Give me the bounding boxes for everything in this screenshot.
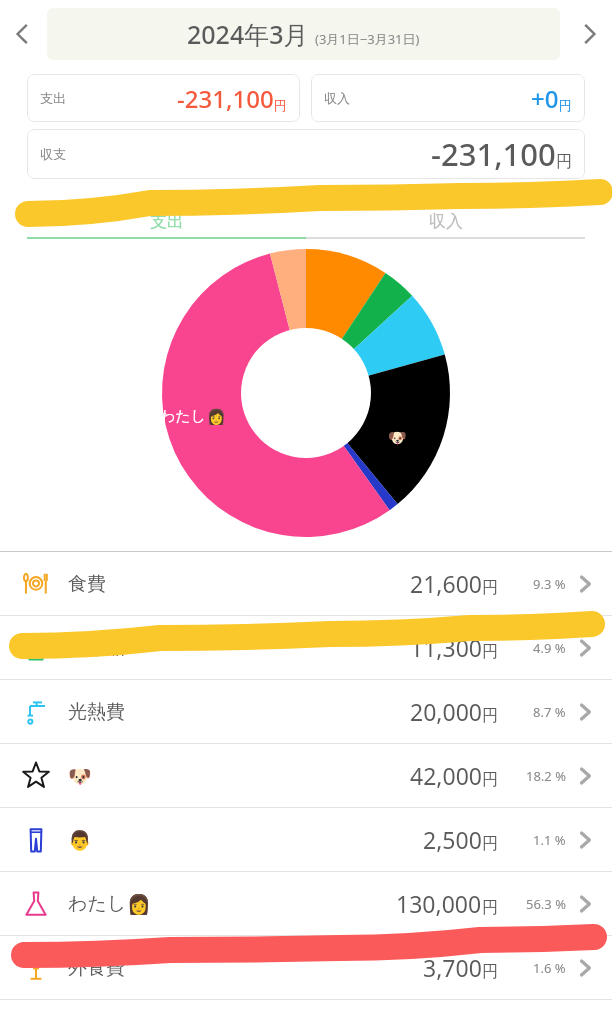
staticText: 円 bbox=[274, 97, 287, 113]
staticText: 収入 bbox=[324, 90, 350, 106]
staticText: 支出 bbox=[40, 90, 66, 106]
staticText: 2024年3月 bbox=[187, 17, 309, 51]
staticText: 130,000 bbox=[396, 888, 482, 919]
staticText: 円 bbox=[482, 578, 498, 598]
button[interactable]: 食費 bbox=[0, 552, 612, 615]
staticText: 円 bbox=[556, 152, 572, 172]
button[interactable]: 支出 bbox=[27, 74, 300, 122]
staticText: 食費 bbox=[68, 572, 106, 596]
staticText: 9.3 % bbox=[533, 575, 566, 593]
staticText: 👨 bbox=[68, 829, 92, 851]
staticText: 👩 bbox=[127, 893, 151, 915]
button[interactable]: 外食費 bbox=[0, 936, 612, 999]
staticText: 光熱費 bbox=[68, 700, 125, 724]
staticText: 収支 bbox=[40, 146, 66, 162]
staticText: 🐶 bbox=[68, 765, 92, 787]
button[interactable]: 👨 bbox=[0, 808, 612, 871]
staticText: 42,000 bbox=[410, 760, 482, 791]
staticText: 18.2 % bbox=[526, 767, 566, 785]
button[interactable]: 光熱費 bbox=[0, 680, 612, 743]
staticText: (3月1日−3月31日) bbox=[315, 30, 420, 48]
staticText: 21,600 bbox=[410, 568, 482, 599]
staticText: +0 bbox=[531, 82, 559, 115]
button[interactable]: 日用品 bbox=[0, 616, 612, 679]
staticText: 56.3 % bbox=[526, 895, 566, 913]
staticText: 円 bbox=[482, 642, 498, 662]
button[interactable]: 収入 bbox=[311, 74, 585, 122]
staticText: 4.9 % bbox=[533, 639, 566, 657]
staticText: 円 bbox=[482, 962, 498, 982]
button[interactable]: 次の月 bbox=[568, 12, 612, 56]
staticText: 👩 bbox=[207, 408, 226, 426]
button[interactable]: 支出 bbox=[27, 205, 306, 237]
staticText: -231,100 bbox=[177, 82, 274, 115]
staticText: 11,300 bbox=[410, 632, 482, 663]
staticText: 3,700 bbox=[423, 952, 482, 983]
button[interactable]: 収支 bbox=[27, 129, 585, 179]
button[interactable]: 前の月 bbox=[0, 12, 44, 56]
staticText: 日用品 bbox=[68, 636, 125, 660]
staticText: 🐶 bbox=[388, 429, 407, 447]
staticText: 円 bbox=[559, 97, 572, 113]
staticText: 2,500 bbox=[423, 824, 482, 855]
staticText: わたし bbox=[68, 892, 127, 916]
staticText: -231,100 bbox=[431, 133, 556, 175]
button[interactable]: 2024年3月 bbox=[47, 8, 560, 60]
staticText: 支出 bbox=[150, 211, 184, 232]
staticText: 20,000 bbox=[410, 696, 482, 727]
staticText: 円 bbox=[482, 770, 498, 790]
button[interactable]: 🐶 bbox=[0, 744, 612, 807]
staticText: 円 bbox=[482, 706, 498, 726]
staticText: 円 bbox=[482, 834, 498, 854]
staticText: 外食費 bbox=[68, 956, 125, 980]
staticText: 1.6 % bbox=[533, 959, 566, 977]
staticText: 収入 bbox=[429, 211, 463, 232]
button[interactable]: わたし bbox=[0, 872, 612, 935]
button[interactable]: 収入 bbox=[306, 205, 585, 237]
staticText: 8.7 % bbox=[533, 703, 566, 721]
staticText: 1.1 % bbox=[533, 831, 566, 849]
staticText: わたし bbox=[160, 407, 207, 426]
staticText: 円 bbox=[482, 898, 498, 918]
